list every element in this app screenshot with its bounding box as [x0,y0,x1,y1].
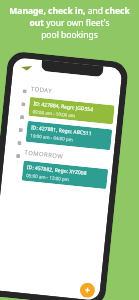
button[interactable]: New booking [79,282,96,298]
staticText: ID: 427881, Regn: ABC511 [31,124,92,137]
button[interactable]: Menu item [10,148,27,163]
button[interactable]: ID: 427884, Regn: JGD554 [28,97,115,124]
button[interactable]: ID: 457882, Regn: XYZ008 [22,161,108,189]
staticText: 09:00 am - 10:00 am [32,108,76,119]
button[interactable]: Menu item [16,84,33,98]
staticText: 05:00 am - 12:00 pm [26,172,69,182]
button[interactable]: Menu item [15,96,32,111]
button[interactable]: Menu item [11,135,28,150]
button[interactable]: ID: 427881, Regn: ABC511 [26,121,112,150]
staticText: ID: 427884, Regn: JGD554 [33,100,93,113]
staticText: TOMORROW [24,149,64,161]
button[interactable]: Menu item [13,109,31,124]
button[interactable]: Menu item [12,122,29,137]
staticText: 10:00 am - 04:00 pm [30,132,73,142]
staticText: Manage, check in, and check out your own… [2,5,137,41]
staticText: TODAY [31,85,53,95]
staticText: ID: 457882, Regn: XYZ008 [27,164,87,177]
